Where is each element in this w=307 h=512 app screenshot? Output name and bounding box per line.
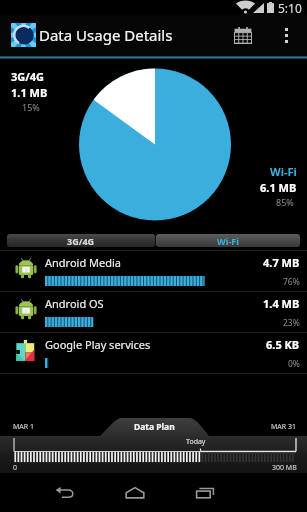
staticText: 0% <box>288 358 300 370</box>
staticText: Wi-Fi <box>217 235 239 247</box>
staticText: 6.5 KB <box>266 337 300 352</box>
staticText: 4.7 MB <box>263 255 300 270</box>
button[interactable]: Back <box>30 474 100 512</box>
staticText: 3G/4G <box>67 235 95 247</box>
staticText: Google Play services <box>45 337 151 352</box>
staticText: 3G/4G <box>11 69 45 84</box>
staticText: Android OS <box>45 296 104 311</box>
staticText: 15% <box>22 101 40 113</box>
staticText: MAR 1 <box>13 422 34 432</box>
button[interactable]: Android Media <box>0 251 307 291</box>
staticText: Wi-Fi <box>270 164 297 179</box>
button[interactable]: 3G/4G <box>7 234 155 247</box>
button[interactable]: Calendar <box>220 14 265 56</box>
staticText: 76% <box>283 276 300 288</box>
button[interactable]: Google Play services <box>0 333 307 373</box>
button[interactable]: Android OS <box>0 292 307 332</box>
button[interactable]: Wi-Fi <box>156 234 300 247</box>
staticText: Today <box>186 437 206 447</box>
staticText: Android Media <box>45 255 121 270</box>
staticText: 0 <box>13 463 18 473</box>
staticText: 1.4 MB <box>263 296 300 311</box>
staticText: 300 MB <box>272 463 297 473</box>
staticText: Data Plan <box>134 421 175 433</box>
button[interactable]: Home <box>100 474 170 512</box>
staticText: 6.1 MB <box>260 180 297 195</box>
button[interactable]: Data Plan <box>99 418 209 436</box>
button[interactable]: Recent apps <box>170 474 240 512</box>
button[interactable]: More options <box>265 14 307 56</box>
staticText: 1.1 MB <box>11 85 48 100</box>
staticText: 85% <box>276 196 294 208</box>
staticText: Data Usage Details <box>39 25 173 45</box>
staticText: 5:10 <box>278 0 302 14</box>
staticText: 23% <box>283 317 300 329</box>
staticText: MAR 31 <box>271 422 297 432</box>
